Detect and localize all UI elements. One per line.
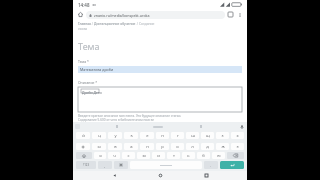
button[interactable]: щ	[201, 132, 214, 139]
staticText: ы	[97, 144, 101, 150]
button[interactable]: ж	[216, 143, 229, 150]
button[interactable]: д	[201, 143, 214, 150]
button[interactable]: Symbols	[76, 161, 96, 169]
staticText: Введите краткое описание конспекта. Это …	[78, 114, 182, 118]
staticText: о	[176, 144, 179, 150]
staticText: ш	[191, 133, 195, 139]
button[interactable]: ф	[76, 143, 90, 150]
button[interactable]: о	[171, 143, 184, 150]
staticText: и	[157, 153, 160, 159]
button[interactable]: р	[156, 143, 169, 150]
staticText: Содержание 5-600 от чего в библиотечном …	[78, 118, 154, 122]
button[interactable]: Математика дроби	[78, 66, 242, 73]
staticText: с	[127, 153, 130, 159]
staticText: ,	[104, 163, 106, 168]
button[interactable]: ь	[182, 152, 195, 159]
button[interactable]: Voice input	[238, 123, 245, 130]
button[interactable]: г	[171, 132, 184, 139]
button[interactable]: а	[124, 143, 138, 150]
button[interactable]: Создание	[139, 21, 155, 25]
button[interactable]: и	[152, 152, 165, 159]
staticText: б	[202, 153, 205, 159]
button[interactable]: Settings	[114, 161, 128, 169]
button[interactable]: Home	[155, 171, 165, 180]
staticText: э	[236, 144, 239, 150]
staticText: ч	[113, 153, 116, 159]
button[interactable]: Tabs	[226, 10, 235, 19]
staticText: ф	[81, 144, 85, 150]
button[interactable]: Backspace	[227, 152, 244, 159]
button[interactable]: в	[108, 143, 122, 150]
button[interactable]: й	[76, 132, 90, 139]
staticText: п	[146, 144, 149, 150]
button[interactable]: Back	[109, 171, 119, 180]
button[interactable]: урока	[78, 26, 88, 30]
button[interactable]: ш	[186, 132, 199, 139]
button[interactable]: я	[94, 152, 106, 159]
button[interactable]: ч	[108, 152, 120, 159]
button[interactable]: м	[137, 152, 150, 159]
button[interactable]: х	[231, 132, 244, 139]
staticText: а	[130, 144, 133, 150]
button[interactable]: Enter	[220, 161, 244, 169]
button[interactable]: Space	[130, 161, 202, 169]
button[interactable]: Keyboard tool	[114, 124, 119, 129]
button[interactable]: Keyboard tool	[198, 124, 203, 129]
staticText: к	[130, 133, 133, 139]
button[interactable]: к	[124, 132, 138, 139]
button[interactable]: н	[156, 132, 169, 139]
staticText: г	[177, 133, 179, 139]
button[interactable]: Recent apps	[201, 171, 211, 180]
button[interactable]: с	[122, 152, 135, 159]
staticText: л	[191, 144, 194, 150]
staticText: Описание *	[78, 80, 98, 85]
button[interactable]: у	[108, 132, 122, 139]
button[interactable]: л	[186, 143, 199, 150]
staticText: т	[173, 153, 175, 159]
staticText: н	[161, 133, 164, 139]
button[interactable]: znanio.ru/media/konspekt-uroka	[86, 11, 225, 19]
staticText: Тема	[78, 40, 100, 52]
button[interactable]: Home	[76, 10, 85, 19]
button[interactable]: Главная	[78, 21, 91, 25]
staticText: й	[82, 133, 85, 139]
staticText: /	[136, 21, 139, 25]
staticText: /	[91, 21, 94, 25]
staticText: ?123	[83, 163, 90, 167]
button[interactable]: б	[197, 152, 210, 159]
button[interactable]: More options	[235, 10, 244, 19]
button[interactable]: ы	[92, 143, 106, 150]
button[interactable]: ю	[212, 152, 225, 159]
staticText: д	[206, 144, 209, 150]
staticText: в	[114, 144, 117, 150]
staticText: щ	[206, 133, 210, 139]
button[interactable]: ц	[92, 132, 106, 139]
button[interactable]: е	[140, 132, 154, 139]
staticText: ю	[217, 153, 221, 159]
button[interactable]: Дистанционное обучение	[94, 21, 136, 25]
button[interactable]: т	[167, 152, 180, 159]
button[interactable]: Дроби.Дети	[78, 87, 242, 112]
staticText: у	[114, 133, 117, 139]
button[interactable]: з	[216, 132, 229, 139]
staticText: е	[146, 133, 149, 139]
staticText: Тема *	[78, 59, 89, 64]
button[interactable]: Language	[98, 161, 112, 169]
staticText: Дроби.Дети	[82, 90, 102, 95]
staticText: Математика дроби	[80, 67, 114, 72]
staticText: я	[99, 153, 102, 159]
staticText: р	[161, 144, 164, 150]
staticText: 14:48	[78, 2, 90, 8]
staticText: .	[210, 163, 212, 168]
staticText: з	[221, 133, 224, 139]
button[interactable]: Clipboard	[153, 126, 163, 128]
staticText: ж	[221, 144, 225, 150]
staticText: м	[142, 153, 146, 159]
staticText: х	[236, 133, 239, 139]
button[interactable]: Shift	[76, 152, 92, 159]
button[interactable]: э	[231, 143, 244, 150]
staticText: ц	[98, 133, 101, 139]
button[interactable]: п	[140, 143, 154, 150]
